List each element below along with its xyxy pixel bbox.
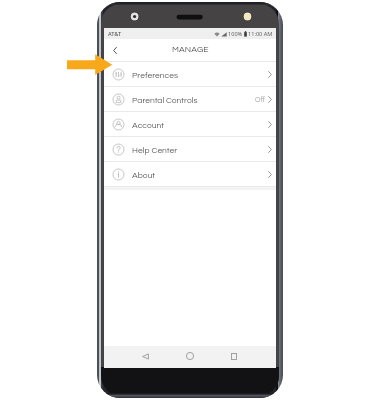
- button[interactable]: Preferences: [104, 62, 276, 86]
- button[interactable]: Back: [137, 348, 153, 364]
- staticText: Help Center: [132, 146, 178, 155]
- button[interactable]: Recent apps: [226, 348, 242, 364]
- button[interactable]: Help Center: [104, 137, 276, 161]
- staticText: About: [132, 171, 156, 180]
- button[interactable]: Parental Controls: [104, 87, 276, 111]
- button[interactable]: Home: [182, 348, 198, 364]
- staticText: Off: [255, 96, 265, 103]
- staticText: Parental Controls: [132, 96, 198, 105]
- button[interactable]: Account: [104, 112, 276, 136]
- staticText: 11:00 AM: [248, 30, 273, 38]
- staticText: MANAGE: [172, 45, 209, 54]
- staticText: Preferences: [132, 71, 178, 80]
- staticText: AT&T: [108, 30, 122, 38]
- button[interactable]: Back: [107, 40, 123, 61]
- staticText: Account: [132, 121, 164, 130]
- staticText: 100%: [228, 30, 243, 38]
- button[interactable]: About: [104, 162, 276, 186]
